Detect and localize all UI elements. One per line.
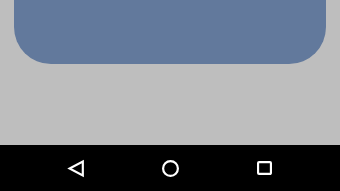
button[interactable]: Home: [123, 145, 217, 191]
button[interactable]: Back: [29, 145, 123, 191]
button[interactable]: Recent apps: [217, 145, 311, 191]
